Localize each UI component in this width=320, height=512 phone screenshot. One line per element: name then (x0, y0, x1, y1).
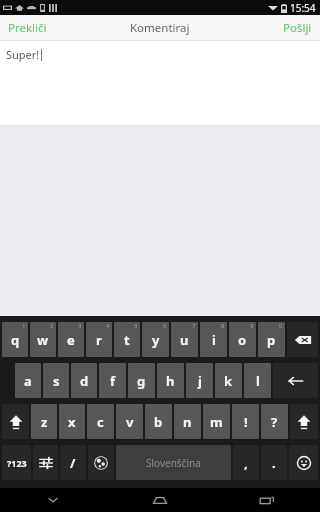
button[interactable]: c (87, 404, 114, 439)
button[interactable]: Shift (290, 404, 318, 439)
button[interactable]: a (15, 363, 41, 398)
staticText: e (67, 331, 75, 349)
staticText: c (97, 413, 104, 431)
button[interactable]: Pošlji (275, 15, 320, 40)
button[interactable]: Super! (0, 41, 320, 125)
button[interactable]: l (244, 363, 271, 398)
staticText: ! (244, 413, 248, 431)
button[interactable]: Emoji (289, 445, 318, 480)
staticText: 7 (192, 322, 196, 330)
button[interactable]: v (116, 404, 143, 439)
button[interactable]: Shift (2, 404, 29, 439)
button[interactable]: k (215, 363, 242, 398)
staticText: m (210, 413, 223, 431)
button[interactable]: s (43, 363, 69, 398)
staticText: , (244, 454, 248, 472)
button[interactable]: Home (106, 488, 213, 512)
staticText: 2 (50, 322, 54, 330)
button[interactable]: i (200, 322, 227, 357)
staticText: f (110, 372, 116, 390)
staticText: s (53, 372, 60, 390)
staticText: Prekliči (8, 20, 47, 36)
button[interactable]: m (203, 404, 230, 439)
staticText: 3 (78, 322, 82, 330)
staticText: w (37, 331, 49, 349)
staticText: 6 (163, 322, 167, 330)
button[interactable]: z (31, 404, 57, 439)
button[interactable]: j (186, 363, 213, 398)
staticText: l (256, 372, 260, 390)
button[interactable]: t (114, 322, 140, 357)
staticText: j (198, 372, 202, 390)
button[interactable]: Enter (273, 363, 318, 398)
button[interactable]: . (261, 445, 287, 480)
button[interactable]: d (71, 363, 97, 398)
staticText: 15:54 (290, 1, 316, 15)
button[interactable]: n (174, 404, 201, 439)
button[interactable]: r (86, 322, 112, 357)
staticText: n (183, 413, 192, 431)
button[interactable]: ?123 (2, 445, 31, 480)
staticText: Super! (6, 47, 40, 62)
button[interactable]: Recent apps (213, 488, 320, 512)
button[interactable]: Change language (88, 445, 114, 480)
button[interactable]: ! (232, 404, 259, 439)
button[interactable]: Hide keyboard (0, 488, 106, 512)
staticText: z (41, 413, 48, 431)
staticText: k (224, 372, 233, 390)
staticText: v (126, 413, 134, 431)
staticText: Komentiraj (130, 20, 190, 36)
button[interactable]: q (2, 322, 28, 357)
staticText: ?123 (7, 457, 27, 469)
staticText: p (267, 331, 276, 349)
button[interactable]: f (99, 363, 126, 398)
button[interactable]: Input settings (33, 445, 58, 480)
staticText: q (11, 331, 20, 349)
staticText: 0 (279, 322, 283, 330)
staticText: t (124, 331, 130, 349)
button[interactable]: p (258, 322, 285, 357)
staticText: Slovenščina (146, 456, 201, 470)
button[interactable]: Backspace (287, 322, 318, 357)
button[interactable]: u (171, 322, 198, 357)
button[interactable]: / (60, 445, 86, 480)
staticText: ? (271, 413, 278, 431)
staticText: / (70, 454, 76, 472)
button[interactable]: Slovenščina (116, 445, 231, 480)
staticText: a (24, 372, 32, 390)
staticText: u (180, 331, 189, 349)
staticText: d (80, 372, 89, 390)
button[interactable]: x (59, 404, 85, 439)
button[interactable]: g (128, 363, 155, 398)
staticText: 1 (22, 322, 26, 330)
staticText: y (152, 331, 160, 349)
staticText: i (212, 331, 216, 349)
button[interactable]: , (233, 445, 259, 480)
staticText: Pošlji (283, 20, 312, 36)
staticText: r (96, 331, 102, 349)
staticText: 5 (134, 322, 138, 330)
staticText: b (154, 413, 163, 431)
staticText: 8 (221, 322, 225, 330)
button[interactable]: h (157, 363, 184, 398)
button[interactable]: Prekliči (0, 15, 55, 40)
staticText: h (166, 372, 175, 390)
button[interactable]: o (229, 322, 256, 357)
staticText: . (272, 454, 276, 472)
staticText: g (137, 372, 146, 390)
staticText: 4 (106, 322, 110, 330)
button[interactable]: ? (261, 404, 288, 439)
staticText: o (238, 331, 247, 349)
button[interactable]: w (30, 322, 56, 357)
button[interactable]: y (142, 322, 169, 357)
staticText: 9 (250, 322, 254, 330)
button[interactable]: e (58, 322, 84, 357)
button[interactable]: b (145, 404, 172, 439)
staticText: x (68, 413, 76, 431)
